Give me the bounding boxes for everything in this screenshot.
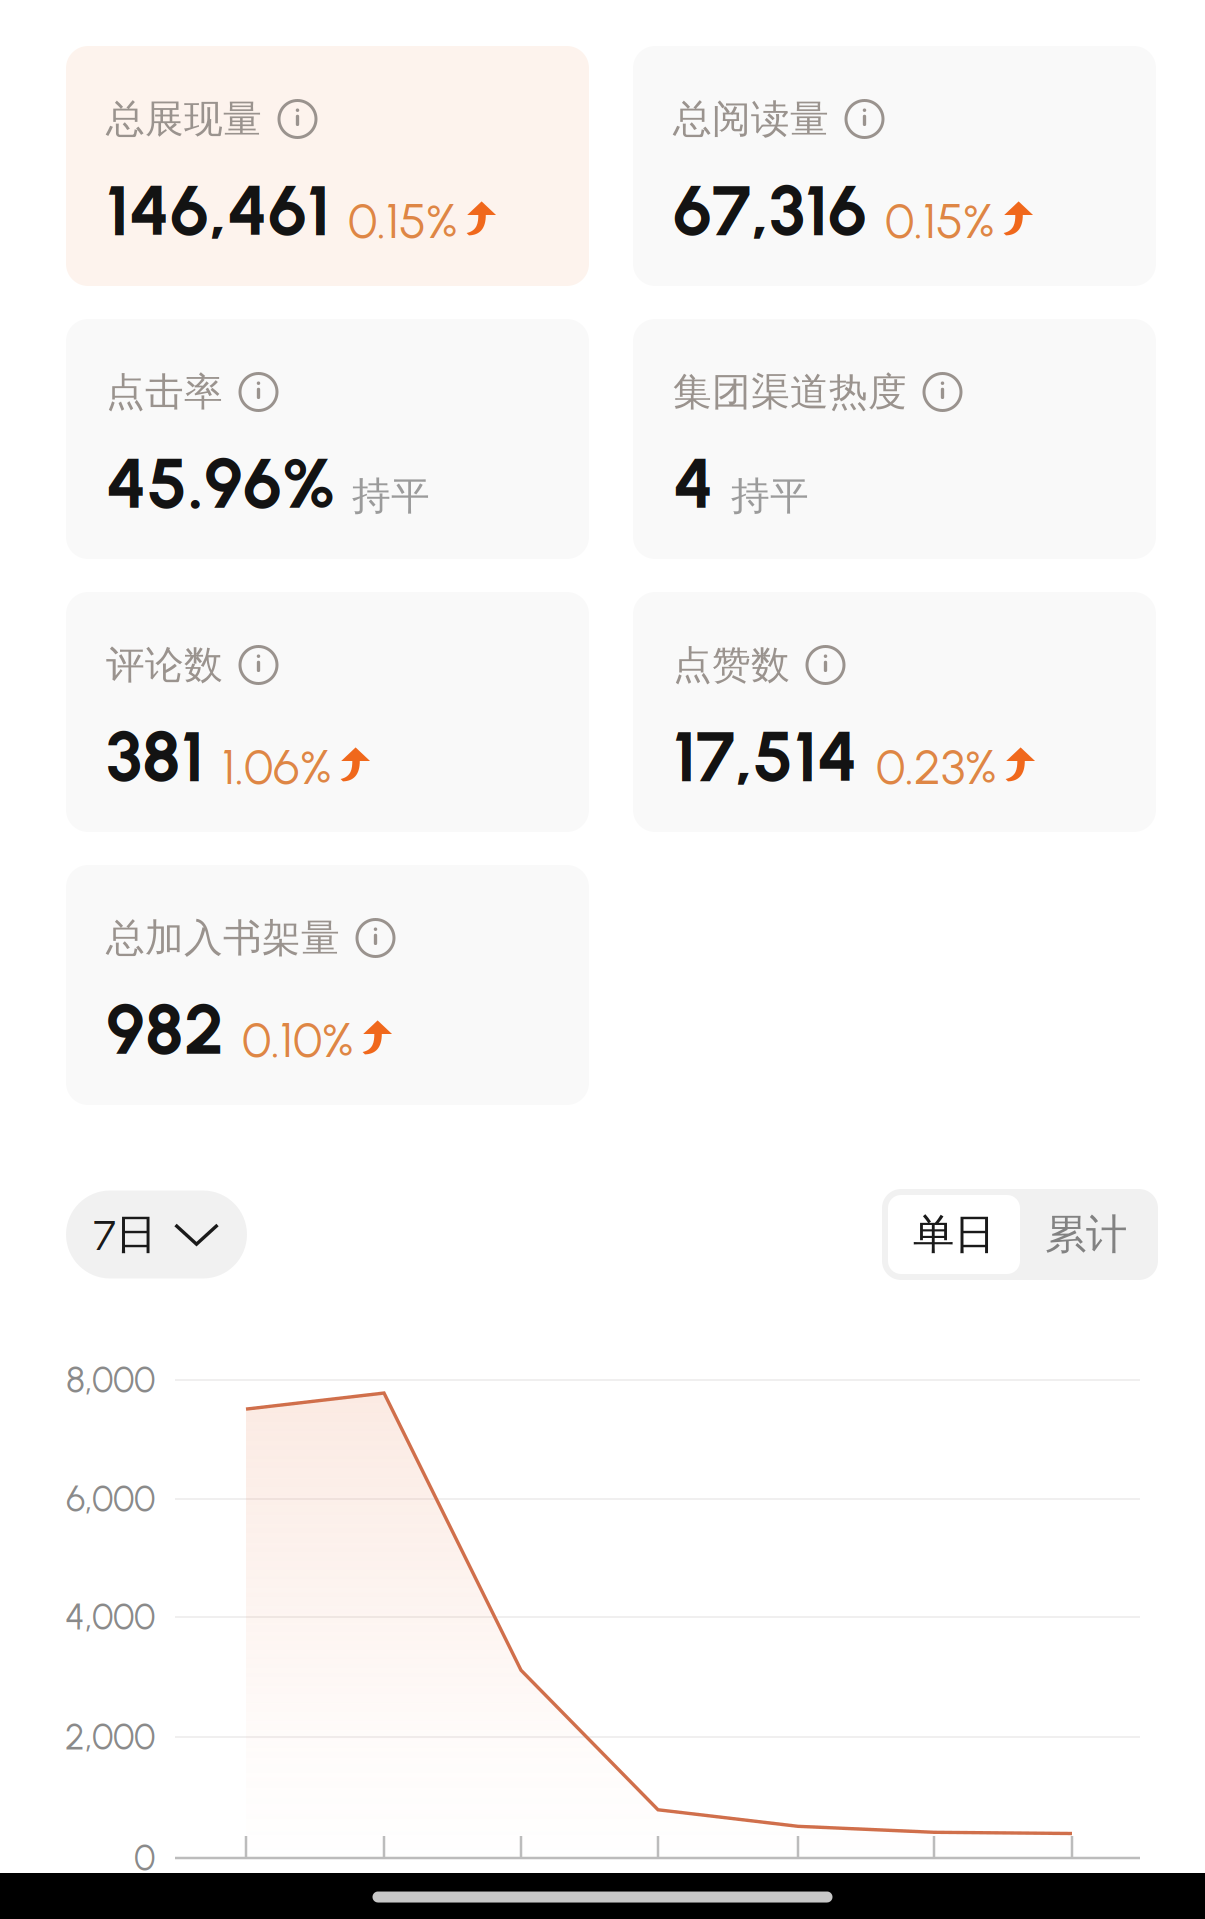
- staticText: 0: [134, 1836, 155, 1880]
- staticText: 评论数: [106, 641, 223, 689]
- staticText: 总加入书架量: [106, 914, 340, 962]
- staticText: 17,514: [673, 714, 858, 798]
- staticText: 6,000: [66, 1477, 155, 1521]
- staticText: 982: [106, 987, 224, 1071]
- button[interactable]: 点击率: [66, 319, 589, 559]
- staticText: 单日: [913, 1208, 995, 1261]
- staticText: 0.10%: [242, 1010, 354, 1069]
- button[interactable]: 评论数: [66, 592, 589, 832]
- button[interactable]: 累计: [1020, 1195, 1152, 1274]
- button[interactable]: 总阅读量: [633, 46, 1156, 286]
- staticText: 7日: [93, 1208, 156, 1261]
- staticText: 2,000: [65, 1715, 155, 1759]
- staticText: 4: [673, 441, 714, 525]
- button[interactable]: 7日: [66, 1190, 247, 1278]
- staticText: 8,000: [66, 1358, 155, 1402]
- staticText: 持平: [352, 472, 430, 520]
- staticText: 总阅读量: [673, 95, 829, 143]
- button[interactable]: 集团渠道热度: [633, 319, 1156, 559]
- button[interactable]: 总加入书架量: [66, 865, 589, 1105]
- staticText: 381: [106, 714, 204, 798]
- staticText: 点击率: [106, 368, 223, 416]
- staticText: 点赞数: [673, 641, 790, 689]
- staticText: 1.06%: [222, 737, 332, 796]
- button[interactable]: 点赞数: [633, 592, 1156, 832]
- staticText: 4,000: [65, 1595, 155, 1639]
- staticText: 累计: [1045, 1208, 1127, 1261]
- staticText: 持平: [731, 472, 809, 520]
- staticText: 总展现量: [106, 95, 262, 143]
- button[interactable]: 单日: [888, 1195, 1020, 1274]
- staticText: 45.96%: [106, 441, 335, 525]
- staticText: 146,461: [106, 168, 330, 252]
- staticText: 0.23%: [876, 737, 997, 796]
- staticText: 67,316: [673, 168, 867, 252]
- button[interactable]: 总展现量: [66, 46, 589, 286]
- staticText: 集团渠道热度: [673, 368, 907, 416]
- staticText: 0.15%: [348, 191, 458, 250]
- staticText: 0.15%: [885, 191, 995, 250]
